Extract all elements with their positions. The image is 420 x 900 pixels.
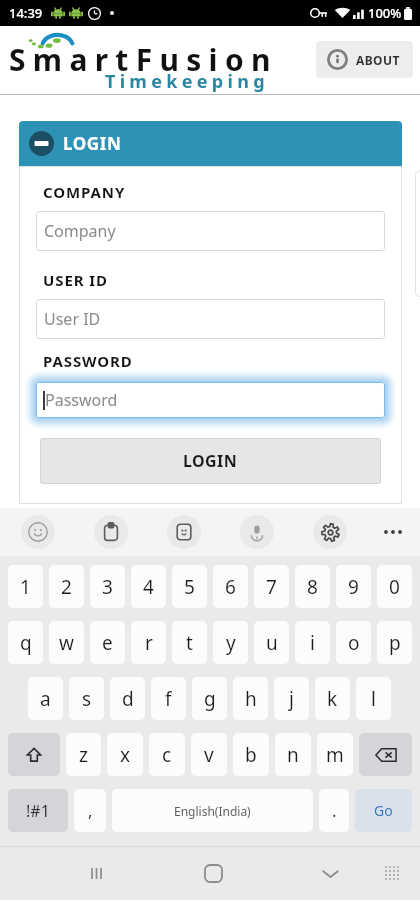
staticText: LOGIN [183,450,238,472]
button[interactable]: LOGIN [19,121,402,166]
staticText: l [371,686,376,712]
button[interactable]: v [191,733,227,776]
button[interactable]: x [107,733,143,776]
button[interactable]: y [213,621,248,664]
staticText: b [245,742,257,768]
button[interactable]: 9 [336,565,371,608]
button[interactable]: d [110,677,145,720]
button[interactable]: 8 [295,565,330,608]
button[interactable]: Hide keyboard [308,851,352,895]
staticText: d [122,686,134,712]
staticText: COMPANY [43,182,126,202]
staticText: i [310,630,315,656]
button[interactable]: 2 [49,565,84,608]
button[interactable]: g [192,677,227,720]
staticText: u [266,630,278,656]
staticText: 0 [389,574,400,600]
staticText: v [204,742,214,768]
button[interactable]: p [377,621,412,664]
staticText: q [20,630,32,656]
button[interactable]: More options [376,515,410,549]
button[interactable]: f [151,677,186,720]
button[interactable]: h [233,677,268,720]
button[interactable]: Home [191,851,235,895]
button[interactable]: Voice input [240,515,274,549]
button[interactable]: !#1 [8,789,68,832]
button[interactable]: Go [355,789,412,832]
button[interactable]: , [74,789,106,832]
staticText: r [145,630,153,656]
button[interactable] [36,382,385,418]
staticText: k [327,686,338,712]
button[interactable]: c [149,733,185,776]
button[interactable]: . [319,789,349,832]
staticText: 9 [348,574,359,600]
staticText: c [162,742,172,768]
staticText: 5 [184,574,195,600]
staticText: Password [45,389,118,411]
staticText: 8 [307,574,318,600]
button[interactable]: 7 [254,565,289,608]
button[interactable]: Emoji [21,515,55,549]
button[interactable]: 1 [8,565,43,608]
staticText: h [245,686,257,712]
staticText: !#1 [26,800,50,822]
button[interactable]: j [274,677,309,720]
staticText: 14:39 [9,4,43,22]
staticText: m [326,742,344,768]
button[interactable]: l [356,677,391,720]
button[interactable]: b [233,733,269,776]
staticText: 100% [368,4,402,22]
staticText: Company [44,220,116,242]
button[interactable] [36,299,385,339]
button[interactable]: 5 [172,565,207,608]
button[interactable]: r [131,621,166,664]
staticText: g [204,686,216,712]
staticText: LOGIN [63,132,122,155]
button[interactable]: Change keyboard [372,853,412,893]
button[interactable]: Shift [8,733,60,776]
button[interactable]: i [295,621,330,664]
button[interactable]: q [8,621,43,664]
staticText: English(India) [174,803,251,819]
button[interactable]: n [275,733,311,776]
staticText: 3 [102,574,113,600]
button[interactable]: z [66,733,101,776]
button[interactable]: 0 [377,565,412,608]
button[interactable]: LOGIN [40,438,381,484]
button[interactable]: Settings [313,515,347,549]
staticText: s [82,686,92,712]
staticText: 2 [61,574,72,600]
staticText: SmartFusion [9,39,278,80]
button[interactable] [36,211,385,251]
button[interactable]: Clipboard [94,515,128,549]
button[interactable]: k [315,677,350,720]
button[interactable]: Backspace [359,733,412,776]
staticText: j [289,686,294,712]
button[interactable]: ABOUT [316,41,413,78]
button[interactable]: 3 [90,565,125,608]
button[interactable]: Stickers [167,515,201,549]
button[interactable]: s [69,677,104,720]
button[interactable]: 6 [213,565,248,608]
button[interactable]: a [28,677,63,720]
staticText: 7 [266,574,277,600]
staticText: 6 [225,574,236,600]
button[interactable]: Recent apps [74,851,118,895]
staticText: p [389,630,401,656]
button[interactable]: w [49,621,84,664]
staticText: ABOUT [356,52,400,68]
staticText: USER ID [43,270,108,290]
button[interactable]: 4 [131,565,166,608]
button[interactable]: o [336,621,371,664]
staticText: PASSWORD [43,351,133,371]
button[interactable]: e [90,621,125,664]
staticText: e [102,630,113,656]
button[interactable]: t [172,621,207,664]
button[interactable]: English(India) [112,789,313,832]
staticText: User ID [44,308,101,330]
button[interactable]: m [317,733,353,776]
staticText: 4 [143,574,154,600]
button[interactable]: u [254,621,289,664]
staticText: x [120,742,131,768]
